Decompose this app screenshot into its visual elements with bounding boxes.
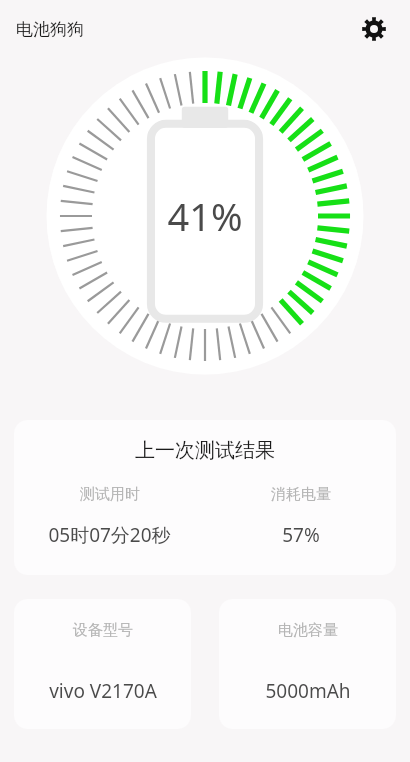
staticText: 上一次测试结果 xyxy=(135,438,275,463)
staticText: 设备型号 xyxy=(73,621,133,640)
button[interactable]: 上一次测试结果 xyxy=(14,420,396,575)
staticText: 测试用时 xyxy=(80,485,140,504)
staticText: vivo V2170A xyxy=(49,678,157,704)
button[interactable]: 设备型号 xyxy=(14,599,191,729)
staticText: 消耗电量 xyxy=(271,485,331,504)
button[interactable]: 电池狗狗 xyxy=(16,19,84,40)
button[interactable]: Settings xyxy=(352,7,396,51)
staticText: 05时07分20秒 xyxy=(48,522,171,548)
staticText: 电池容量 xyxy=(278,621,338,640)
staticText: 57% xyxy=(282,522,320,548)
staticText: 41% xyxy=(167,190,243,242)
button[interactable]: 电池容量 xyxy=(219,599,396,729)
staticText: 5000mAh xyxy=(265,678,351,704)
staticText: 电池狗狗 xyxy=(16,19,84,40)
